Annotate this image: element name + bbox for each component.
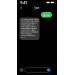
staticText: Jon	[34, 6, 39, 10]
staticText: Lorem ipsum dolor sit amet, consectetur …	[21, 19, 38, 38]
staticText: Sounds good!	[42, 14, 50, 28]
staticText: 9:41	[20, 0, 27, 5]
